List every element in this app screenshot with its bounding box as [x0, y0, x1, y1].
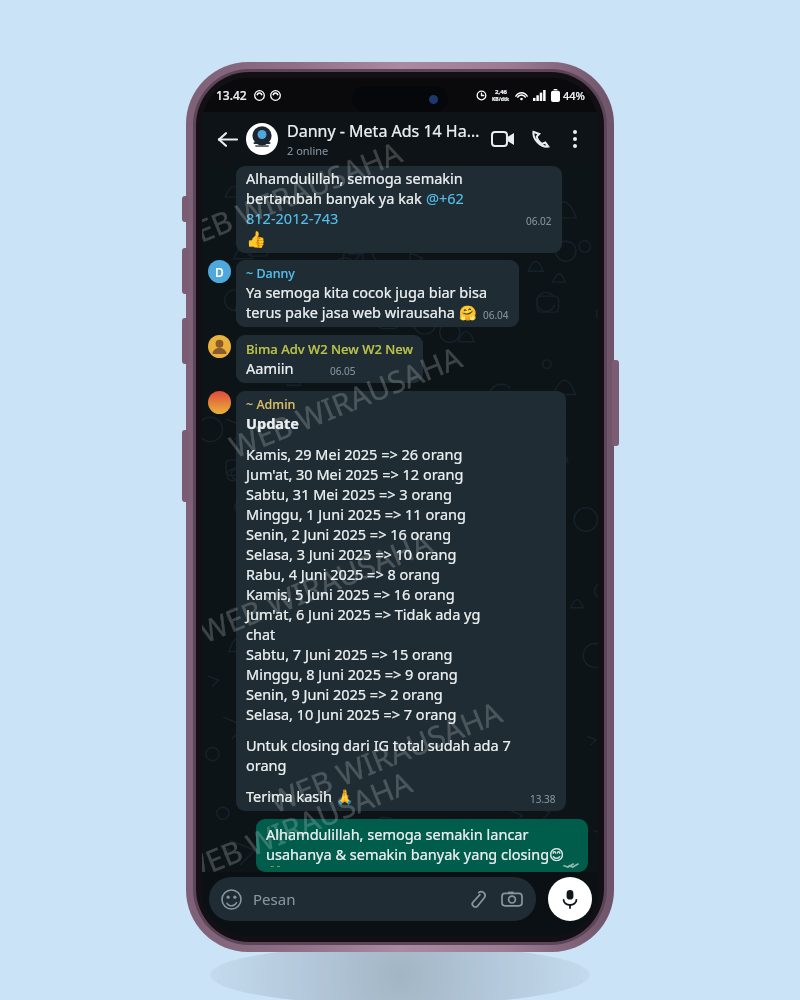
staticText: Ya semoga kita cocok juga biar bisa: [246, 282, 488, 302]
button[interactable]: Pesan: [209, 877, 536, 921]
staticText: Terima kasih 🙏: [246, 786, 354, 806]
staticText: Minggu, 1 Juni 2025 => 11 orang: [246, 504, 466, 524]
staticText: orang: [246, 755, 287, 775]
staticText: Danny - Meta Ads 14 Ha…: [287, 120, 480, 142]
button[interactable]: Bima Adv W2 New W2 New: [236, 335, 423, 383]
staticText: Jum'at, 30 Mei 2025 => 12 orang: [246, 464, 464, 484]
staticText: Sabtu, 7 Juni 2025 => 15 orang: [246, 644, 453, 664]
button[interactable]: Danny - Meta Ads 14 Ha…: [287, 120, 486, 158]
staticText: WEB WIRAUSAHA: [202, 521, 438, 652]
button[interactable]: ~ Danny: [236, 260, 519, 327]
staticText: 06.02: [526, 214, 552, 228]
staticText: KB/dtk: [492, 96, 510, 103]
staticText: ~ Danny: [246, 265, 295, 282]
button[interactable]: Back: [210, 122, 244, 156]
staticText: @+62: [426, 188, 464, 208]
button[interactable]: Alhamdulillah, semoga semakin: [236, 166, 562, 253]
staticText: Senin, 9 Juni 2025 => 2 orang: [246, 684, 443, 704]
staticText: terus pake jasa web wirausaha 🤗: [246, 302, 477, 322]
button[interactable]: Voice message: [548, 877, 592, 921]
staticText: Alhamdulillah, semoga semakin: [246, 168, 463, 188]
staticText: Alhamdulillah, semoga semakin lancar: [266, 824, 529, 844]
staticText: WEB WIRAUSAHA: [263, 691, 508, 822]
staticText: Sabtu, 31 Mei 2025 => 3 orang: [246, 484, 452, 504]
staticText: Aamiin: [246, 358, 294, 378]
staticText: Minggu, 8 Juni 2025 => 9 orang: [246, 664, 458, 684]
staticText: Update: [246, 413, 299, 433]
button[interactable]: ~ Admin: [236, 391, 566, 811]
button[interactable]: Camera: [500, 887, 524, 911]
button[interactable]: More options: [560, 124, 590, 154]
staticText: 06.04: [483, 308, 509, 322]
staticText: Bima Adv W2 New W2 New: [246, 340, 413, 358]
staticText: bertambah banyak ya kak: [246, 188, 426, 208]
staticText: 2 online: [287, 143, 329, 158]
staticText: 06.05: [330, 364, 356, 378]
staticText: D: [215, 264, 224, 280]
staticText: Senin, 2 Juni 2025 => 16 orang: [246, 524, 452, 544]
staticText: Selasa, 10 Juni 2025 => 7 orang: [246, 704, 457, 724]
button[interactable]: Alhamdulillah, semoga semakin lancar: [256, 819, 588, 872]
button[interactable]: Voice call: [524, 122, 558, 156]
staticText: WEB WIRAUSAHA: [202, 131, 408, 262]
button[interactable]: Video call: [486, 122, 520, 156]
staticText: Kamis, 5 Juni 2025 => 16 orang: [246, 584, 455, 604]
staticText: 👍: [246, 230, 266, 249]
staticText: chat: [246, 624, 276, 644]
staticText: WEB WIRAUSAHA: [223, 336, 468, 467]
button[interactable]: Attach: [464, 887, 488, 911]
staticText: Untuk closing dari IG total sudah ada 7: [246, 735, 511, 755]
staticText: usahanya & semakin banyak yang closing😊: [266, 844, 565, 864]
staticText: Selasa, 3 Juni 2025 => 10 orang: [246, 544, 457, 564]
staticText: Rabu, 4 Juni 2025 => 8 orang: [246, 564, 440, 584]
staticText: 812-2012-743: [246, 208, 339, 228]
staticText: ~ Admin: [246, 396, 296, 413]
staticText: 13.42: [216, 87, 247, 103]
staticText: 44%: [563, 88, 585, 103]
staticText: 🤲: [266, 864, 285, 867]
staticText: Jum'at, 6 Juni 2025 => Tidak ada yg: [246, 604, 481, 624]
staticText: 13.38: [530, 792, 556, 806]
staticText: 2,46: [495, 88, 508, 96]
staticText: Pesan: [253, 889, 296, 909]
staticText: WEB WIRAUSAHA: [202, 761, 418, 892]
staticText: Kamis, 29 Mei 2025 => 26 orang: [246, 444, 463, 464]
